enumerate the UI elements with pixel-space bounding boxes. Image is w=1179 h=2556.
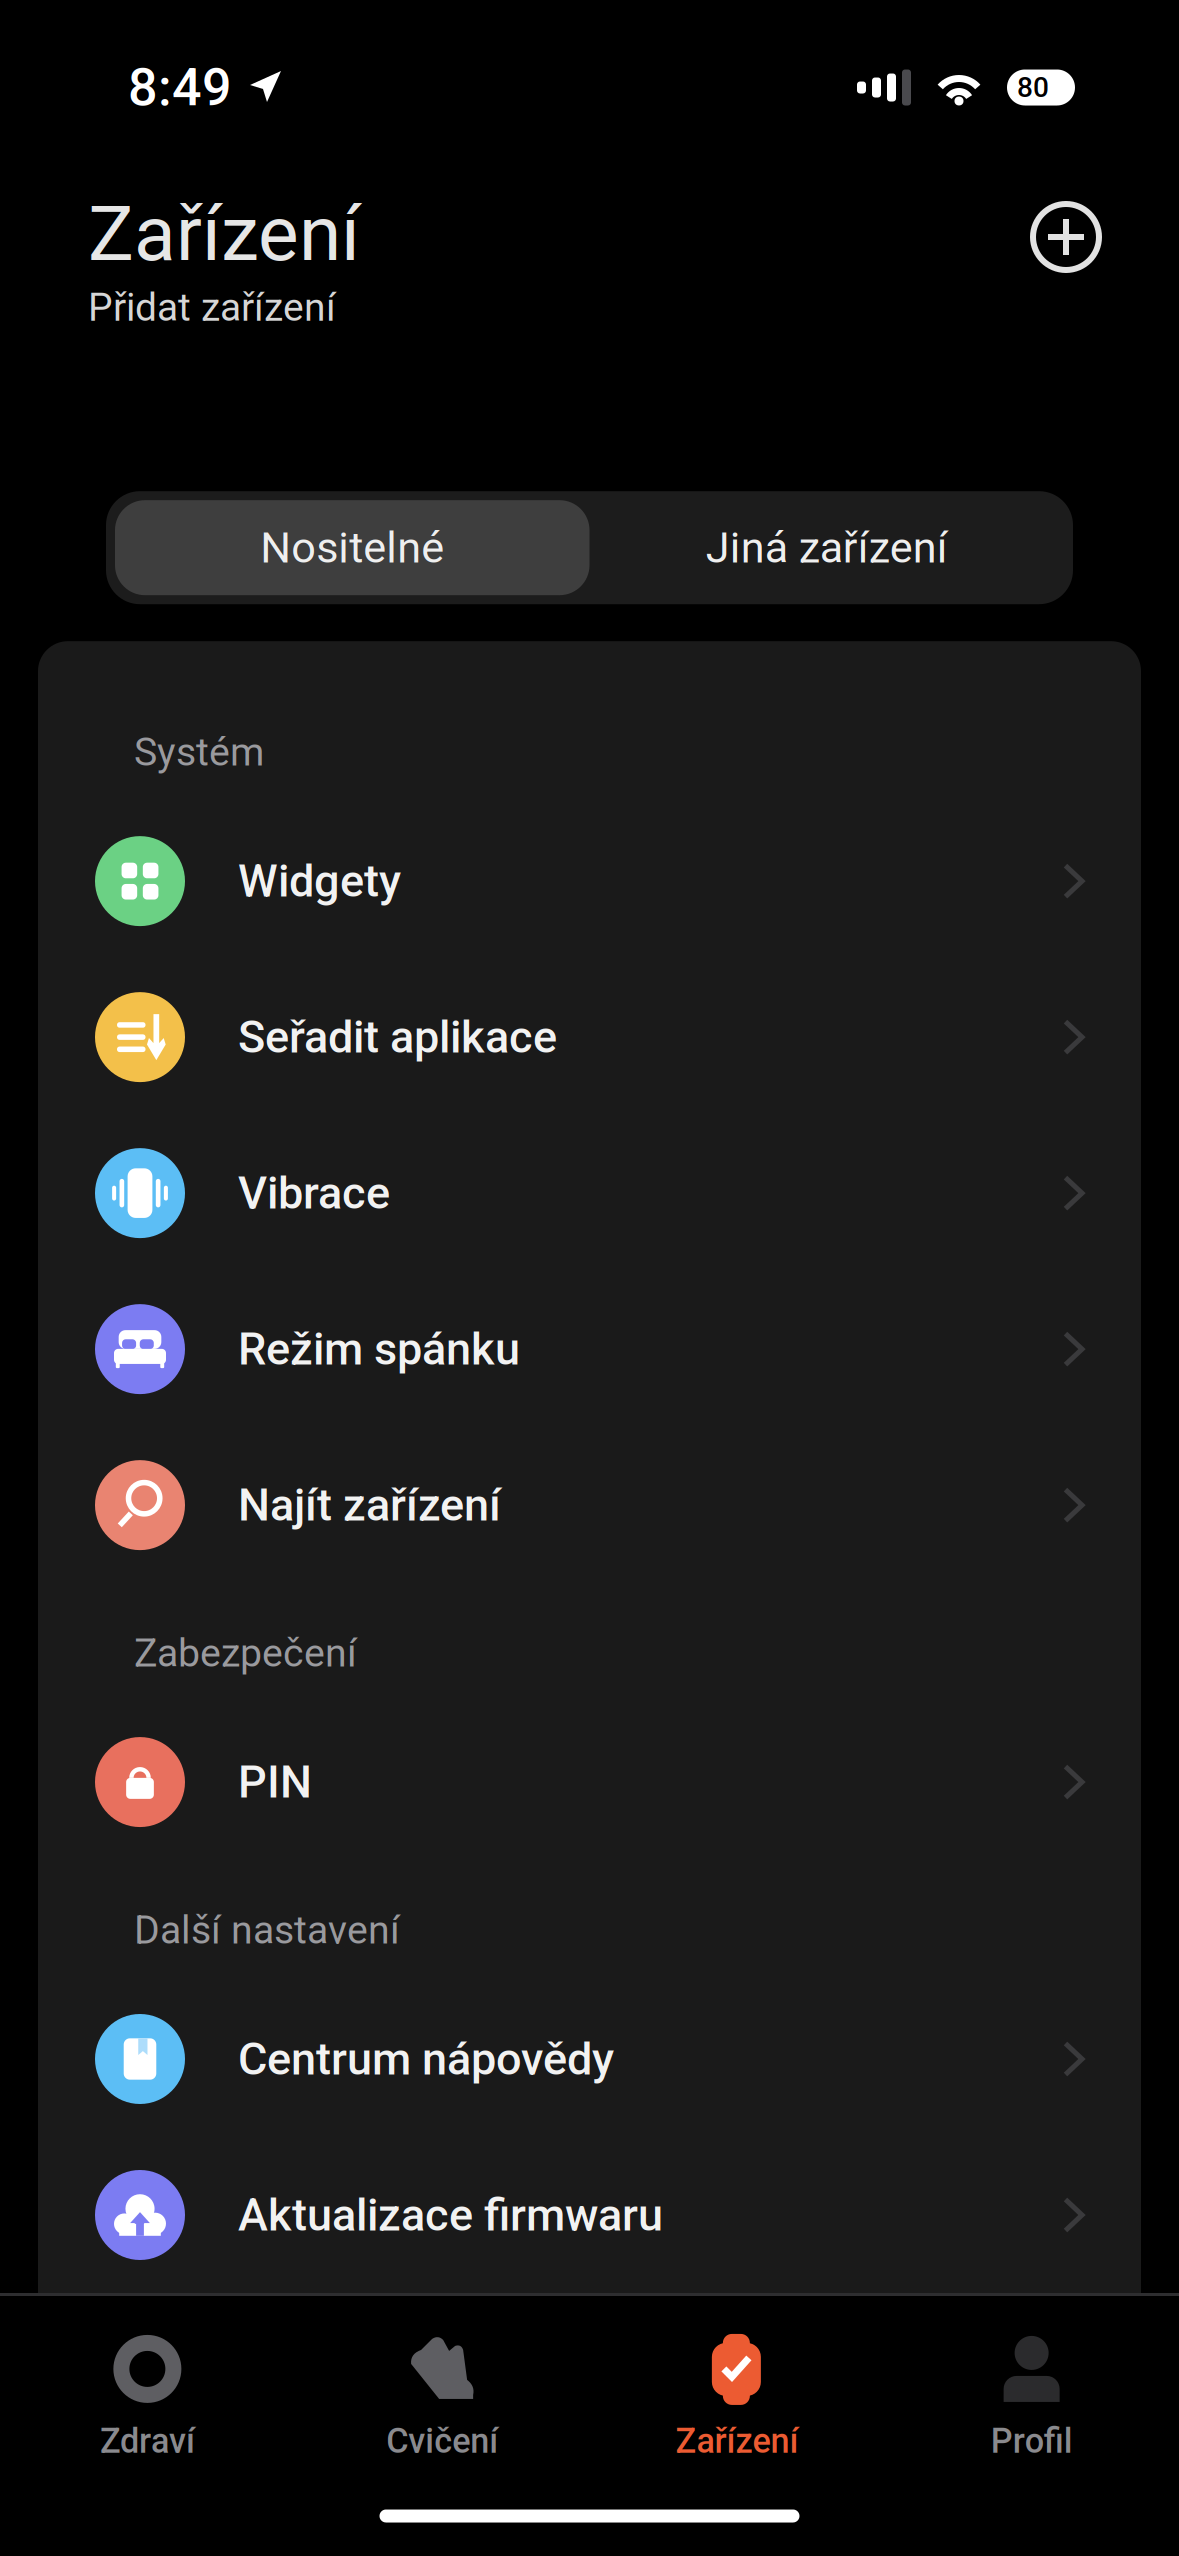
- button[interactable]: Nositelné: [115, 500, 589, 595]
- button[interactable]: Aktualizace firmwaru: [38, 2137, 1141, 2293]
- staticText: Widgety: [238, 855, 401, 907]
- staticText: Aktualizace firmwaru: [238, 2189, 663, 2241]
- staticText: Vibrace: [238, 1167, 390, 1219]
- staticText: Zařízení: [88, 189, 360, 279]
- staticText: Zabezpečení: [134, 1630, 357, 1676]
- button[interactable]: Najít zařízení: [38, 1427, 1141, 1583]
- button[interactable]: Režim spánku: [38, 1271, 1141, 1427]
- staticText: Nositelné: [260, 522, 444, 573]
- staticText: Najít zařízení: [238, 1479, 501, 1531]
- staticText: PIN: [238, 1756, 312, 1808]
- button[interactable]: Seřadit aplikace: [38, 959, 1141, 1115]
- button[interactable]: Zařízení: [589, 2311, 884, 2461]
- staticText: Centrum nápovědy: [238, 2033, 614, 2085]
- button[interactable]: PIN: [38, 1704, 1141, 1860]
- staticText: 80: [1017, 71, 1049, 104]
- staticText: Další nastavení: [134, 1907, 400, 1953]
- staticText: Seřadit aplikace: [238, 1011, 557, 1063]
- staticText: Zařízení: [675, 2421, 798, 2461]
- button[interactable]: Profil: [884, 2311, 1179, 2461]
- staticText: Zdraví: [100, 2421, 195, 2461]
- button[interactable]: Cvičení: [295, 2311, 590, 2461]
- button[interactable]: Zdraví: [0, 2311, 295, 2461]
- staticText: Systém: [134, 729, 264, 775]
- button[interactable]: Jiná zařízení: [589, 500, 1064, 595]
- staticText: Cvičení: [386, 2421, 498, 2461]
- button[interactable]: Centrum nápovědy: [38, 1981, 1141, 2137]
- button[interactable]: Widgety: [38, 803, 1141, 959]
- button[interactable]: Přidat zařízení: [1024, 195, 1108, 279]
- staticText: Jiná zařízení: [706, 522, 948, 573]
- staticText: Profil: [991, 2421, 1073, 2461]
- staticText: Režim spánku: [238, 1323, 520, 1375]
- staticText: 8:49: [128, 57, 232, 118]
- staticText: Přidat zařízení: [88, 285, 336, 330]
- button[interactable]: Vibrace: [38, 1115, 1141, 1271]
